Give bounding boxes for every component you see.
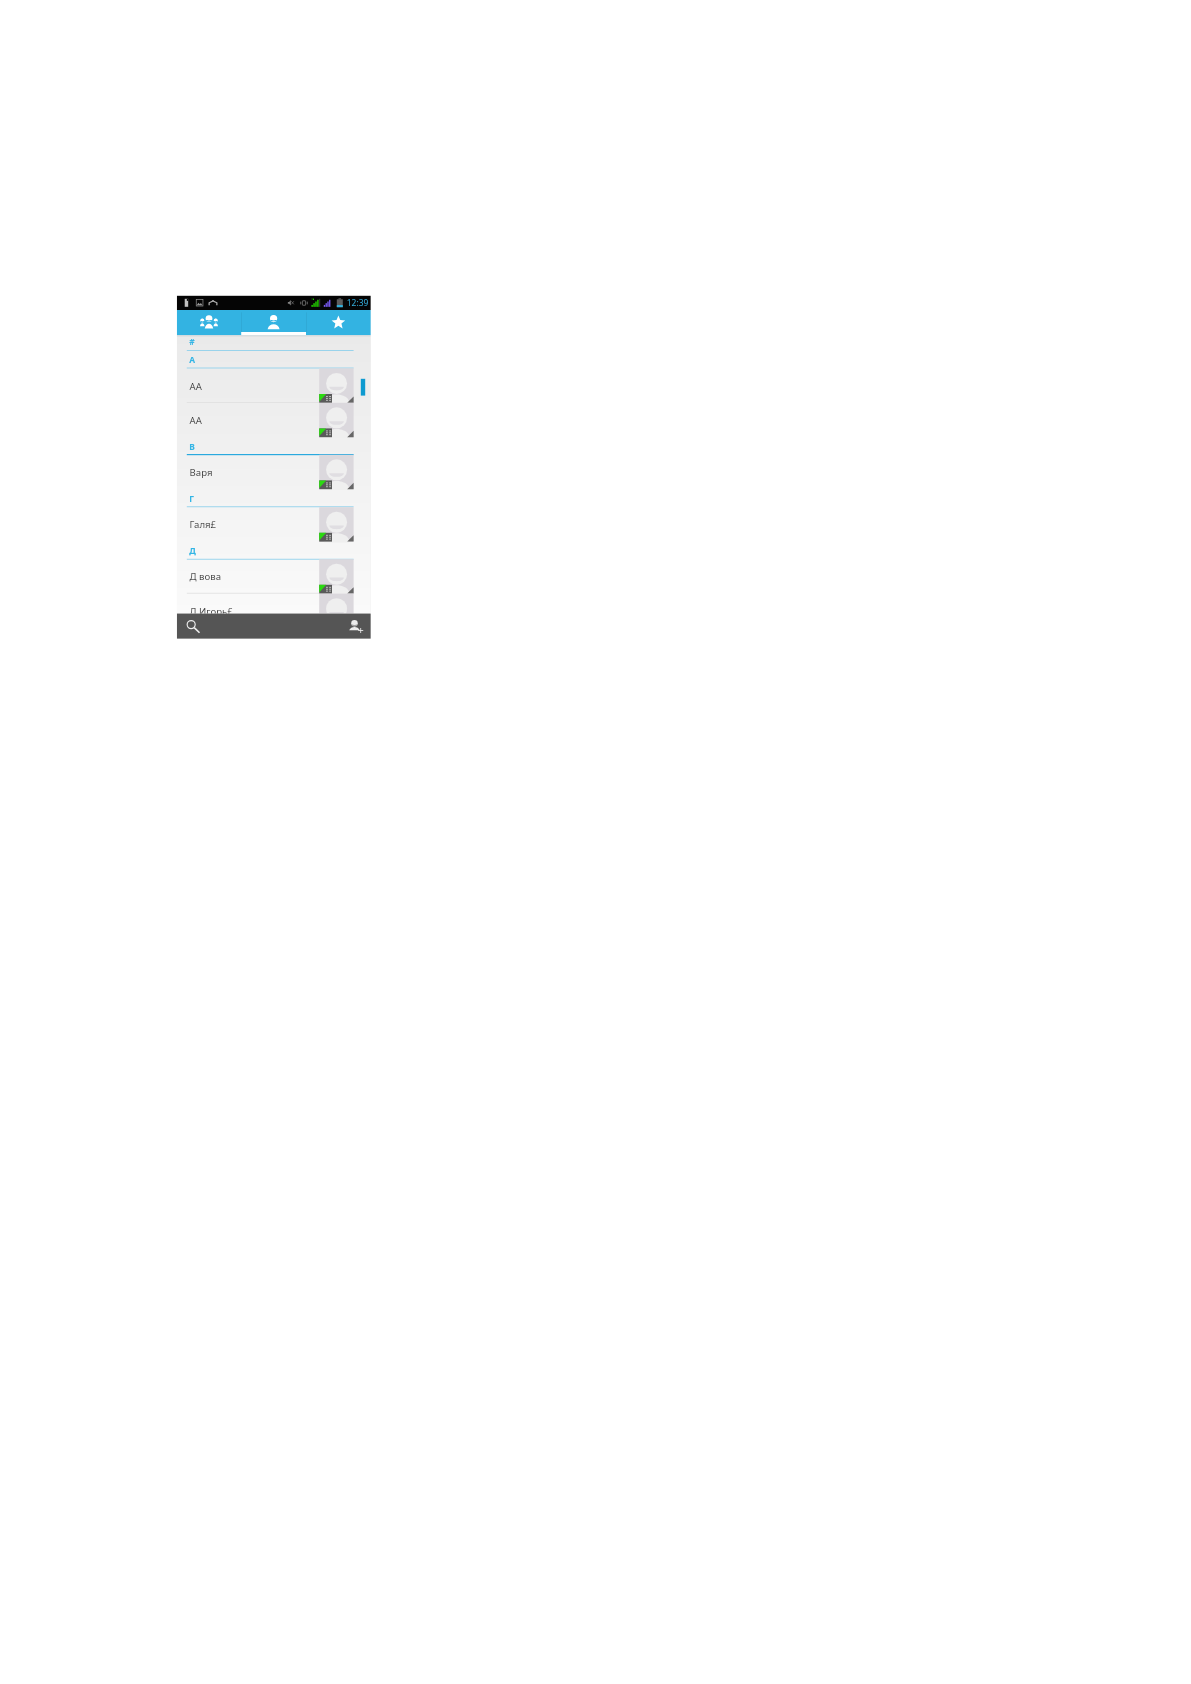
staticText: Г [189, 493, 194, 504]
button[interactable]: Add contact [344, 614, 368, 639]
button[interactable]: Галя£ [177, 507, 371, 542]
staticText: Варя [190, 466, 213, 479]
staticText: Д вова [190, 570, 221, 583]
staticText: АА [190, 414, 202, 427]
staticText: Д [189, 545, 196, 557]
staticText: АА [190, 379, 202, 392]
button[interactable]: Groups tab [177, 310, 241, 335]
button[interactable]: Search [182, 614, 205, 639]
button[interactable]: АА [177, 403, 371, 437]
staticText: Д Игорь£ [190, 604, 233, 614]
button[interactable]: Favorites tab [306, 310, 371, 335]
staticText: # [189, 336, 195, 348]
staticText: В [189, 441, 195, 452]
button[interactable]: Д вова [177, 559, 371, 594]
button[interactable]: АА [177, 368, 371, 403]
staticText: А [189, 354, 195, 366]
staticText: Галя£ [190, 518, 216, 531]
button[interactable]: Д Игорь£ [177, 594, 371, 614]
button[interactable]: Варя [177, 455, 371, 489]
button[interactable]: Contacts tab [241, 310, 306, 335]
staticText: 12:39 [347, 297, 368, 309]
